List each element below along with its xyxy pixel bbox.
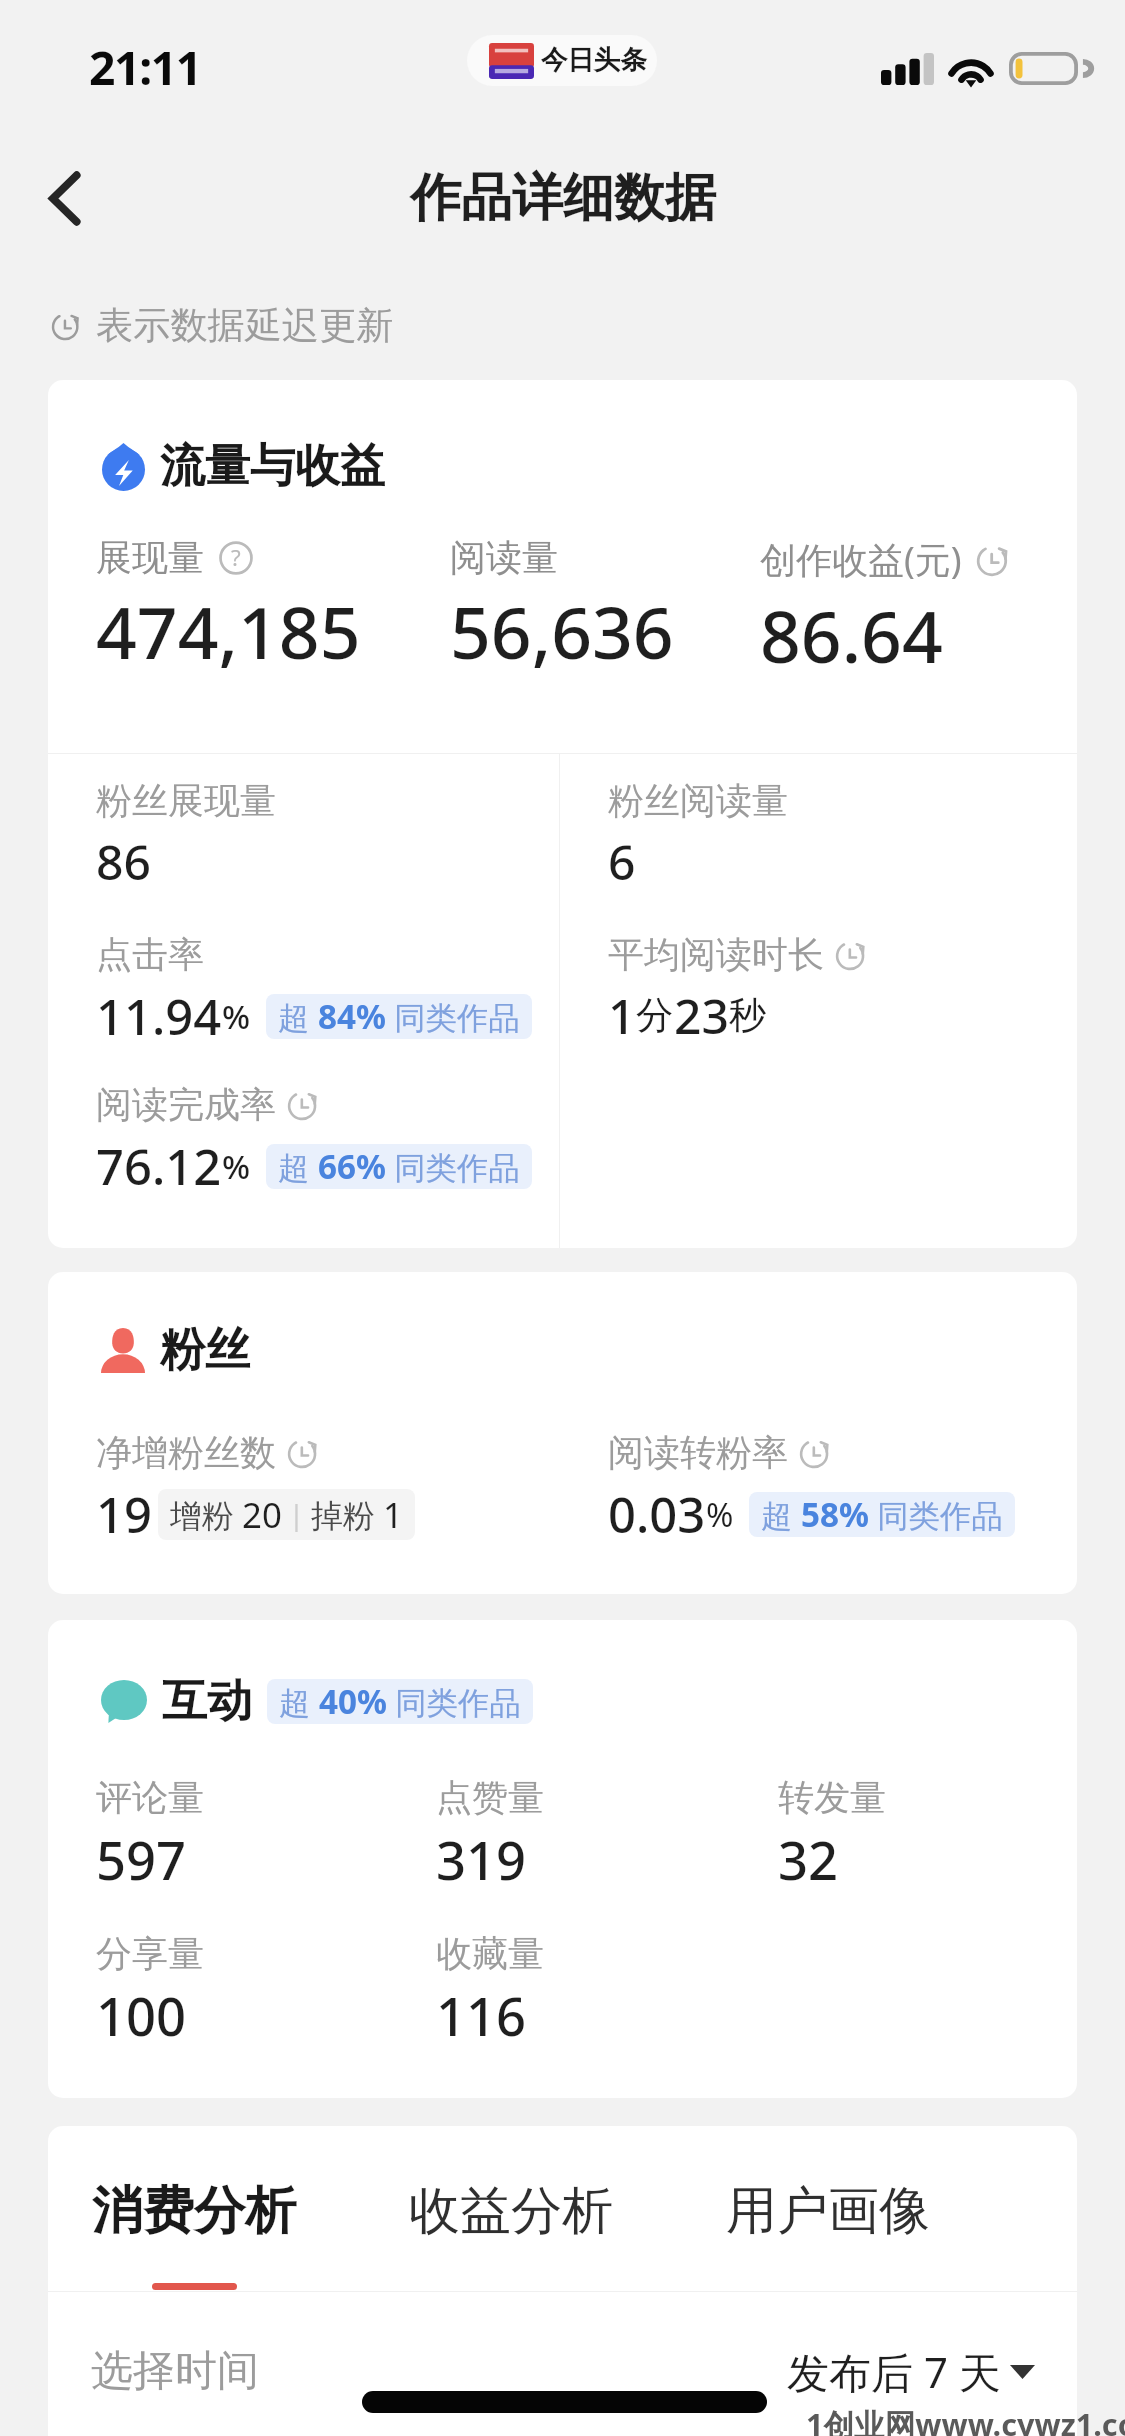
staticText: 收益分析 [409, 2179, 613, 2243]
staticText: 表示数据延迟更新 [96, 302, 394, 349]
staticText: 今日头条 [541, 44, 647, 77]
staticText: 分享量 [96, 1931, 204, 1976]
staticText: 作品详细数据 [410, 166, 716, 230]
staticText: 同类作品 [869, 1493, 1003, 1536]
staticText: % [222, 1144, 251, 1189]
staticText: 收藏量 [436, 1931, 544, 1976]
button[interactable]: Data is delayed [288, 1437, 320, 1469]
staticText: 同类作品 [386, 1145, 520, 1188]
button[interactable]: What is impressions [219, 541, 253, 575]
staticText: 创作收益(元) [760, 535, 962, 584]
staticText: 粉丝 [160, 1322, 250, 1379]
staticText: 展现量 [96, 535, 204, 580]
staticText: 1创业网www.cywz1.com [806, 2403, 1125, 2436]
staticText: 11.94 [96, 983, 222, 1050]
button[interactable]: 发布后 7 天 [787, 2343, 1035, 2400]
button[interactable]: Data is delayed [288, 1089, 320, 1121]
staticText: 超 [761, 1493, 801, 1536]
staticText: 76.12 [96, 1133, 222, 1200]
staticText: 0.03 [608, 1481, 706, 1548]
staticText: 同类作品 [387, 1680, 521, 1723]
staticText: 消费分析 [92, 2179, 296, 2243]
button[interactable]: Back [16, 150, 112, 246]
staticText: 116 [436, 1980, 527, 2052]
staticText: 分 [636, 992, 674, 1039]
staticText: 增粉 [170, 1493, 242, 1536]
staticText: 点赞量 [436, 1775, 544, 1820]
staticText: 发布后 7 天 [787, 2343, 1001, 2400]
staticText: 1 [383, 1491, 403, 1538]
staticText: 阅读完成率 [96, 1082, 276, 1127]
staticText: % [222, 994, 251, 1039]
staticText: % [706, 1492, 734, 1537]
staticText: 选择时间 [91, 2345, 259, 2398]
staticText: 1 [608, 983, 636, 1048]
staticText: 粉丝展现量 [96, 778, 276, 823]
staticText: 19 [96, 1481, 152, 1548]
staticText: 粉丝阅读量 [608, 778, 788, 823]
staticText: 58% [801, 1492, 869, 1537]
button[interactable]: 消费分析 [92, 2179, 296, 2290]
button[interactable]: Data is delayed [800, 1437, 832, 1469]
staticText: 秒 [729, 992, 767, 1039]
staticText: 用户画像 [726, 2179, 930, 2243]
staticText: 100 [96, 1980, 187, 2052]
staticText: 474,185 [96, 583, 361, 680]
button[interactable]: Data is delayed [836, 939, 868, 971]
staticText: 流量与收益 [160, 438, 385, 495]
staticText: 6 [608, 829, 636, 894]
button[interactable]: 评论量 [96, 1775, 204, 1896]
button[interactable]: 收藏量 [436, 1931, 544, 2052]
staticText: 86 [96, 829, 151, 894]
staticText: 转发量 [778, 1775, 886, 1820]
staticText: 66% [318, 1144, 386, 1189]
staticText: 阅读转粉率 [608, 1430, 788, 1475]
button[interactable]: 创作收益(元) [760, 535, 1011, 684]
staticText: 23 [674, 983, 729, 1048]
button[interactable]: 阅读量 [450, 535, 674, 680]
staticText: | [282, 1496, 311, 1533]
staticText: 20 [242, 1491, 282, 1538]
staticText: 319 [436, 1824, 527, 1896]
staticText: 86.64 [760, 587, 943, 684]
button[interactable]: 点赞量 [436, 1775, 544, 1896]
staticText: 32 [778, 1824, 839, 1896]
staticText: 597 [96, 1824, 187, 1896]
staticText: 点击率 [96, 932, 204, 977]
staticText: 互动 [162, 1673, 252, 1730]
staticText: 评论量 [96, 1775, 204, 1820]
button[interactable]: 展现量 [96, 535, 361, 680]
staticText: 超 [279, 1680, 319, 1723]
staticText: 平均阅读时长 [608, 932, 824, 977]
staticText: 掉粉 [311, 1493, 383, 1536]
staticText: ? [231, 542, 241, 572]
staticText: 超 [278, 995, 318, 1038]
staticText: 同类作品 [386, 995, 520, 1038]
staticText: 40% [319, 1679, 387, 1724]
button[interactable]: 转发量 [778, 1775, 886, 1896]
staticText: 21:11 [89, 36, 201, 99]
button[interactable]: 用户画像 [726, 2179, 930, 2290]
staticText: 阅读量 [450, 535, 558, 580]
button[interactable]: 分享量 [96, 1931, 204, 2052]
staticText: 56,636 [450, 583, 674, 680]
button[interactable]: Data is delayed [977, 543, 1011, 577]
staticText: 84% [318, 994, 386, 1039]
staticText: 超 [278, 1145, 318, 1188]
staticText: 净增粉丝数 [96, 1430, 276, 1475]
button[interactable]: 收益分析 [409, 2179, 613, 2290]
